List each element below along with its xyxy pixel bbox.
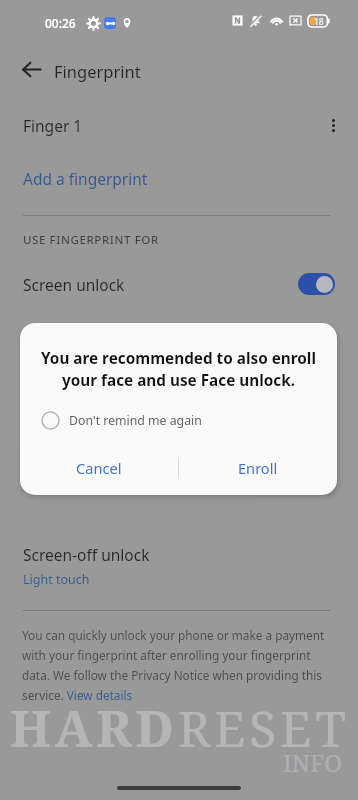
button[interactable]: Back	[11, 49, 51, 89]
staticText: Fingerprint	[54, 60, 141, 82]
staticText: 00:26	[45, 15, 76, 31]
button[interactable]	[298, 273, 335, 295]
staticText: You are recommended to also enroll your …	[36, 348, 321, 391]
staticText: 18	[314, 16, 324, 28]
button[interactable]: Screen-off unlock	[0, 536, 358, 588]
button[interactable]: Screen unlock	[0, 262, 358, 306]
button[interactable]: Finger 1	[0, 103, 358, 147]
staticText: HARDRESET	[10, 694, 350, 762]
button[interactable]: Cancel	[20, 444, 178, 492]
button[interactable]: Add a fingerprint	[0, 157, 358, 199]
staticText: USE FINGERPRINT FOR	[23, 232, 159, 248]
button[interactable]: Enroll	[179, 444, 337, 492]
staticText: Don't remind me again	[69, 412, 202, 429]
staticText: Add a fingerprint	[23, 168, 148, 189]
staticText: You can quickly unlock your phone or mak…	[22, 627, 335, 703]
staticText: Screen-off unlock	[23, 544, 150, 565]
staticText: Screen unlock	[23, 274, 125, 295]
staticText: Finger 1	[23, 115, 83, 136]
button[interactable]: Don't remind me again	[20, 403, 337, 437]
staticText: INFO	[283, 746, 343, 779]
staticText: Cancel	[76, 458, 122, 478]
staticText: Light touch	[23, 571, 90, 588]
button[interactable]: More options	[318, 110, 348, 140]
staticText: Enroll	[238, 458, 278, 478]
